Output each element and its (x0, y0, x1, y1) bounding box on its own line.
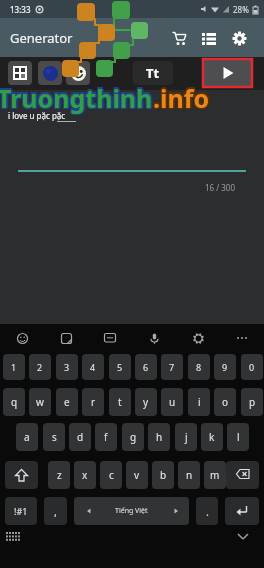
staticText: g (130, 430, 137, 444)
button[interactable]: q (3, 388, 25, 416)
button[interactable] (100, 328, 120, 348)
button[interactable] (38, 61, 62, 85)
staticText: q (11, 395, 18, 409)
button[interactable]: f (95, 423, 117, 451)
button[interactable]: a (16, 423, 38, 451)
staticText: 4 (90, 361, 96, 373)
button[interactable] (225, 497, 259, 525)
button[interactable]: 4 (82, 354, 104, 380)
button[interactable] (8, 61, 32, 85)
staticText: Tt (146, 64, 160, 82)
button[interactable] (196, 25, 222, 51)
button[interactable]: 7 (161, 354, 183, 380)
button[interactable]: t (109, 388, 131, 416)
button[interactable]: j (175, 423, 197, 451)
button[interactable]: w (29, 388, 51, 416)
button[interactable]: 0 (241, 354, 263, 380)
button[interactable] (188, 328, 208, 348)
staticText: Truongthinh (0, 79, 154, 113)
staticText: a (24, 430, 30, 444)
staticText: v (134, 468, 140, 482)
staticText: 5 (117, 361, 123, 373)
staticText: l (237, 430, 240, 444)
button[interactable]: Tt (133, 61, 173, 85)
button[interactable] (226, 25, 252, 51)
staticText: .info (155, 81, 212, 115)
button[interactable]: 5 (109, 354, 131, 380)
button[interactable]: x (74, 461, 96, 489)
button[interactable] (5, 461, 38, 489)
staticText: .info (153, 79, 210, 113)
staticText: Truongthinh (0, 82, 152, 116)
staticText: 16 / 300 (205, 182, 236, 193)
button[interactable]: m (204, 461, 226, 489)
button[interactable]: s (43, 423, 65, 451)
staticText: c (109, 468, 114, 482)
button[interactable] (232, 328, 252, 348)
button[interactable]: e (56, 388, 78, 416)
button[interactable]: z (48, 461, 70, 489)
button[interactable]: v (126, 461, 148, 489)
staticText: Truongthinh (0, 79, 152, 113)
button[interactable] (226, 461, 259, 489)
staticText: e (64, 395, 70, 409)
button[interactable]: , (44, 497, 67, 525)
staticText: h (156, 430, 163, 444)
staticText: i (198, 395, 201, 409)
staticText: z (57, 468, 62, 482)
staticText: .info (153, 82, 210, 116)
staticText: y (143, 395, 149, 409)
button[interactable]: 1 (3, 354, 25, 380)
button[interactable]: . (196, 497, 218, 525)
staticText: 2 (37, 361, 43, 373)
button[interactable] (66, 61, 90, 85)
staticText: m (210, 468, 220, 482)
button[interactable] (144, 328, 164, 348)
staticText: .info (152, 79, 209, 113)
button[interactable]: g (122, 423, 144, 451)
staticText: 0 (249, 361, 255, 373)
staticText: w (36, 395, 44, 409)
button[interactable]: c (100, 461, 122, 489)
button[interactable] (166, 25, 192, 51)
staticText: .info (152, 81, 209, 115)
staticText: f (104, 430, 108, 444)
button[interactable]: h (148, 423, 170, 451)
staticText: Truongthinh (0, 81, 155, 115)
staticText: u (169, 395, 176, 409)
button[interactable]: 2 (29, 354, 51, 380)
button[interactable]: o (214, 388, 236, 416)
staticText: 6 (143, 361, 149, 373)
button[interactable]: Tiếng Việt (74, 497, 189, 525)
button[interactable]: r (82, 388, 104, 416)
button[interactable]: !#1 (5, 497, 37, 525)
staticText: j (185, 430, 188, 444)
button[interactable]: k (201, 423, 223, 451)
button[interactable]: n (178, 461, 200, 489)
staticText: 28% (233, 4, 249, 15)
button[interactable]: 3 (56, 354, 78, 380)
button[interactable]: 8 (188, 354, 210, 380)
staticText: o (222, 395, 229, 409)
button[interactable]: i (188, 388, 210, 416)
staticText: 7 (169, 361, 175, 373)
button[interactable]: 9 (214, 354, 236, 380)
button[interactable]: l (227, 423, 249, 451)
button[interactable]: 6 (135, 354, 157, 380)
staticText: 3 (64, 361, 70, 373)
staticText: x (82, 468, 88, 482)
staticText: Truongthinh (0, 82, 153, 116)
button[interactable] (202, 58, 253, 88)
staticText: t (118, 395, 122, 409)
staticText: r (91, 395, 96, 409)
button[interactable]: u (161, 388, 183, 416)
button[interactable]: p (241, 388, 263, 416)
button[interactable]: d (69, 423, 91, 451)
button[interactable] (56, 328, 76, 348)
button[interactable]: b (152, 461, 174, 489)
button[interactable] (12, 328, 32, 348)
button[interactable]: y (135, 388, 157, 416)
staticText: .info (154, 82, 211, 116)
staticText: d (77, 430, 84, 444)
staticText: Tiếng Việt (115, 506, 148, 516)
